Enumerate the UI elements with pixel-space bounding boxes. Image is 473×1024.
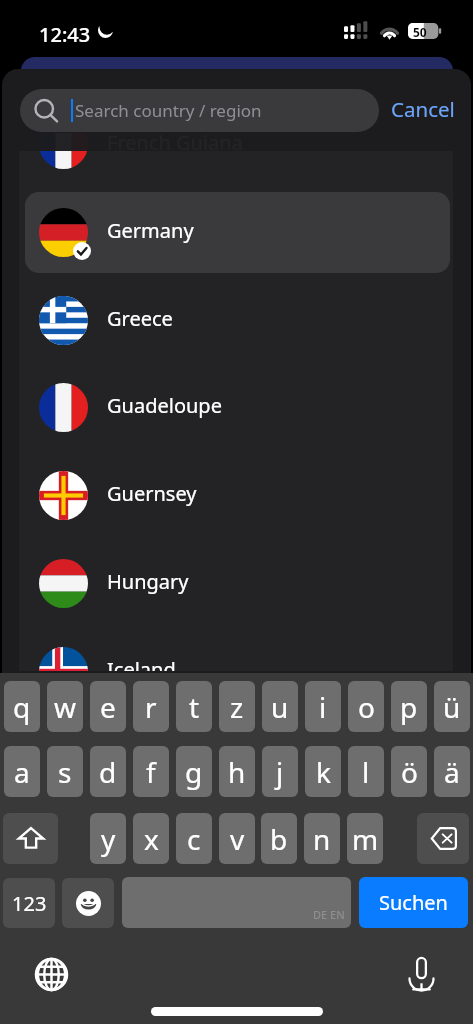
button[interactable]: 123 — [3, 878, 55, 928]
button[interactable]: s — [47, 746, 83, 797]
staticText: r — [145, 688, 157, 726]
button[interactable]: y — [90, 813, 126, 864]
button[interactable]: Guadeloupe — [25, 367, 450, 448]
staticText: DE EN — [313, 907, 345, 922]
staticText: s — [58, 753, 72, 791]
staticText: d — [99, 753, 117, 791]
staticText: ü — [443, 688, 461, 726]
staticText: ö — [401, 753, 418, 791]
button[interactable]: Search country / region — [20, 89, 379, 132]
staticText: m — [352, 820, 379, 858]
button[interactable]: h — [219, 746, 255, 797]
staticText: o — [358, 688, 375, 726]
button[interactable]: Emoji — [62, 878, 114, 928]
button[interactable]: x — [133, 813, 169, 864]
staticText: 12:43 — [39, 21, 91, 48]
staticText: Guadeloupe — [107, 392, 222, 419]
staticText: z — [230, 688, 244, 726]
staticText: i — [319, 688, 327, 726]
staticText: g — [185, 753, 203, 791]
staticText: p — [400, 688, 418, 726]
button[interactable]: Cancel — [385, 87, 461, 130]
button[interactable]: c — [176, 813, 212, 864]
button[interactable]: o — [348, 681, 384, 732]
button[interactable]: Suchen — [359, 877, 468, 928]
staticText: e — [100, 688, 116, 726]
button[interactable]: e — [90, 681, 126, 732]
button[interactable]: l — [348, 746, 384, 797]
button[interactable]: Space — [122, 877, 351, 928]
button[interactable]: d — [90, 746, 126, 797]
button[interactable]: Shift — [3, 813, 58, 864]
staticText: a — [14, 753, 30, 791]
staticText: 123 — [12, 890, 47, 917]
staticText: Hungary — [107, 568, 189, 595]
button[interactable]: Change keyboard — [35, 958, 68, 991]
button[interactable]: a — [4, 746, 40, 797]
staticText: b — [270, 820, 288, 858]
staticText: Suchen — [379, 889, 448, 916]
button[interactable]: r — [133, 681, 169, 732]
staticText: c — [187, 820, 201, 858]
staticText: j — [276, 753, 284, 791]
staticText: w — [54, 688, 77, 726]
button[interactable]: Greece — [25, 280, 450, 361]
staticText: v — [230, 820, 245, 858]
button[interactable]: u — [262, 681, 298, 732]
button[interactable]: p — [391, 681, 427, 732]
button[interactable]: i — [305, 681, 341, 732]
staticText: Cancel — [391, 95, 455, 123]
staticText: u — [271, 688, 289, 726]
button[interactable]: ä — [434, 746, 470, 797]
button[interactable]: n — [304, 813, 340, 864]
staticText: Search country / region — [75, 99, 262, 122]
staticText: ä — [444, 753, 460, 791]
button[interactable]: ö — [391, 746, 427, 797]
staticText: h — [228, 753, 246, 791]
button[interactable]: Germany — [25, 192, 450, 273]
staticText: French Guiana — [107, 133, 243, 156]
button[interactable]: Backspace — [417, 813, 469, 864]
staticText: Greece — [107, 305, 173, 332]
button[interactable]: g — [176, 746, 212, 797]
button[interactable]: Iceland — [25, 631, 450, 671]
staticText: x — [144, 820, 159, 858]
button[interactable]: ü — [434, 681, 470, 732]
button[interactable]: w — [47, 681, 83, 732]
button[interactable]: Voice input — [409, 956, 434, 991]
staticText: f — [146, 753, 156, 791]
button[interactable]: m — [347, 813, 383, 864]
button[interactable]: v — [219, 813, 255, 864]
staticText: q — [13, 688, 31, 726]
staticText: 50 — [413, 24, 427, 40]
staticText: y — [101, 820, 116, 858]
button[interactable]: French Guiana — [25, 133, 450, 185]
button[interactable]: Guernsey — [25, 455, 450, 536]
button[interactable]: z — [219, 681, 255, 732]
staticText: Guernsey — [107, 480, 197, 507]
staticText: n — [313, 820, 331, 858]
button[interactable]: Hungary — [25, 543, 450, 624]
staticText: k — [316, 753, 331, 791]
button[interactable]: k — [305, 746, 341, 797]
button[interactable]: t — [176, 681, 212, 732]
staticText: Iceland — [107, 656, 176, 671]
staticText: t — [189, 688, 200, 726]
button[interactable]: f — [133, 746, 169, 797]
button[interactable]: q — [4, 681, 40, 732]
staticText: l — [362, 753, 370, 791]
button[interactable]: b — [261, 813, 297, 864]
button[interactable]: j — [262, 746, 298, 797]
staticText: Germany — [107, 217, 194, 244]
